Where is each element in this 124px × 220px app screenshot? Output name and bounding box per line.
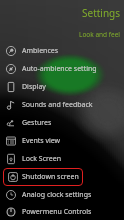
button[interactable]: Events view bbox=[0, 132, 124, 150]
staticText: Events view bbox=[22, 136, 61, 146]
button[interactable]: Gestures bbox=[0, 114, 124, 132]
button[interactable]: Sounds and feedback bbox=[0, 96, 124, 114]
button[interactable]: Shutdown screen bbox=[3, 168, 83, 186]
staticText: Settings bbox=[82, 6, 121, 20]
staticText: Auto-ambience setting bbox=[22, 64, 97, 74]
button[interactable]: Powermenu Controls bbox=[0, 204, 124, 220]
button[interactable]: Display bbox=[0, 78, 124, 96]
staticText: Gestures bbox=[22, 118, 52, 128]
staticText: Powermenu Controls bbox=[22, 207, 92, 217]
staticText: Look and feel bbox=[79, 30, 121, 39]
staticText: Lock Screen bbox=[22, 154, 61, 164]
button[interactable]: Lock Screen bbox=[0, 150, 124, 168]
staticText: Shutdown screen bbox=[22, 172, 79, 182]
button[interactable]: Ambiences bbox=[0, 42, 124, 60]
staticText: Sounds and feedback bbox=[22, 100, 93, 110]
button[interactable]: Analog clock settings bbox=[0, 186, 124, 204]
staticText: Display bbox=[22, 82, 46, 92]
button[interactable]: Auto-ambience setting bbox=[0, 60, 124, 78]
staticText: Ambiences bbox=[22, 46, 59, 56]
staticText: Analog clock settings bbox=[22, 190, 92, 200]
